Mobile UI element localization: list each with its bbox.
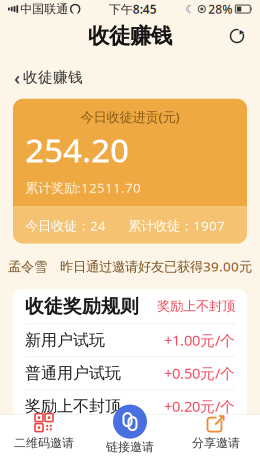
staticText: 收徒赚钱 xyxy=(23,68,83,86)
staticText: 收徒奖励规则 xyxy=(25,295,139,318)
staticText: +0.20元/个 xyxy=(164,396,235,416)
staticText: 奖励上不封顶 xyxy=(157,298,235,314)
staticText: 254.20 xyxy=(25,127,129,172)
staticText: 累计收徒：1907 xyxy=(128,217,225,234)
button[interactable]: 链接邀请 xyxy=(87,399,173,462)
button[interactable]: 二维码邀请 xyxy=(1,408,87,455)
staticText: ▸ xyxy=(239,26,244,37)
button[interactable]: ↗ xyxy=(173,408,259,455)
staticText: 分享邀请 xyxy=(192,436,240,450)
staticText: 新用户试玩 xyxy=(25,330,105,350)
staticText: 普通用户试玩 xyxy=(25,363,121,383)
staticText: 二维码邀请 xyxy=(14,436,74,450)
staticText: 下午8:45 xyxy=(109,1,157,17)
staticText: +0.50元/个 xyxy=(164,363,235,383)
staticText: +1.00元/个 xyxy=(164,330,235,350)
staticText: 累计奖励:12511.70 xyxy=(25,179,141,196)
staticText: 链接邀请 xyxy=(106,440,154,454)
staticText: 奖励上不封顶 xyxy=(25,396,121,416)
button[interactable]: ‹ xyxy=(14,60,89,95)
staticText: ☾ xyxy=(185,3,195,15)
staticText: 今日收徒进贡(元) xyxy=(80,108,179,125)
staticText: 28% xyxy=(208,1,232,17)
staticText: 孟令雪 昨日通过邀请好友已获得39.00元 xyxy=(8,257,252,275)
button[interactable]: 刷新 xyxy=(220,19,254,53)
staticText: 今日收徒：24 xyxy=(25,217,106,234)
staticText: 收徒赚钱 xyxy=(88,23,172,49)
staticText: ↗ xyxy=(212,410,227,430)
staticText: 中国联通 xyxy=(20,2,68,16)
staticText: ‹ xyxy=(14,65,20,90)
